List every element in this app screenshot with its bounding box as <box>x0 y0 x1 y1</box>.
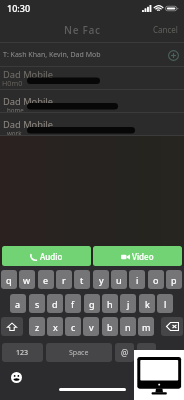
button[interactable]: Audio <box>2 246 91 266</box>
button[interactable]: Shift <box>1 317 23 336</box>
button[interactable]: r <box>56 270 72 289</box>
button[interactable]: Video <box>93 246 182 266</box>
staticText: r <box>62 274 66 286</box>
staticText: u <box>116 274 122 286</box>
button[interactable]: m <box>138 317 154 336</box>
button[interactable]: u <box>111 270 127 289</box>
other: Shift <box>7 322 17 332</box>
staticText: Audio <box>40 251 63 262</box>
button[interactable]: h <box>102 294 118 313</box>
button[interactable]: . <box>137 343 156 362</box>
staticText: y <box>99 274 104 286</box>
staticText: Ne Fac <box>64 23 101 37</box>
staticText: s <box>35 298 40 310</box>
staticText: H0m0 <box>2 78 23 88</box>
button[interactable]: Dad Mobile <box>0 113 184 136</box>
button[interactable]: g <box>84 294 100 313</box>
staticText: Dad Mobile <box>3 95 53 108</box>
button[interactable]: Cancel <box>153 24 178 35</box>
button[interactable]: Emoji <box>11 372 22 383</box>
staticText: x <box>53 321 58 333</box>
button[interactable]: v <box>83 317 99 336</box>
staticText: c <box>71 321 76 333</box>
button[interactable]: Dad Mobile <box>0 90 184 113</box>
staticText: b <box>107 321 113 333</box>
staticText: z <box>35 321 40 333</box>
staticText: 10:30 <box>7 2 31 14</box>
button[interactable]: i <box>129 270 145 289</box>
staticText: work <box>7 129 22 136</box>
button[interactable]: e <box>38 270 54 289</box>
staticText: m <box>142 321 151 333</box>
staticText: @ <box>121 347 129 358</box>
button[interactable]: b <box>102 317 118 336</box>
staticText: j <box>127 298 130 310</box>
staticText: Video <box>132 251 154 262</box>
staticText: w <box>23 274 31 286</box>
button[interactable]: o <box>148 270 164 289</box>
staticText: . <box>145 347 148 358</box>
staticText: v <box>89 321 94 333</box>
button[interactable]: l <box>157 294 173 313</box>
staticText: k <box>145 298 150 310</box>
button[interactable]: Add contact <box>168 50 179 61</box>
button[interactable]: f <box>65 294 81 313</box>
button[interactable]: s <box>29 294 45 313</box>
button[interactable]: 123 <box>2 343 43 362</box>
button[interactable]: w <box>19 270 35 289</box>
button[interactable]: x <box>47 317 63 336</box>
staticText: i <box>136 274 139 286</box>
staticText: g <box>89 298 95 310</box>
staticText: f <box>71 298 75 310</box>
staticText: o <box>153 274 159 286</box>
staticText: n <box>125 321 131 333</box>
staticText: 123 <box>16 348 29 358</box>
button[interactable]: k <box>139 294 155 313</box>
button[interactable]: d <box>47 294 63 313</box>
button[interactable]: a <box>10 294 26 313</box>
button[interactable]: t <box>74 270 90 289</box>
staticText: l <box>164 298 167 310</box>
button[interactable]: p <box>166 270 182 289</box>
button[interactable]: Space <box>46 343 112 362</box>
staticText: p <box>171 274 177 286</box>
staticText: home <box>7 106 24 113</box>
staticText: q <box>6 274 12 286</box>
staticText: d <box>52 298 58 310</box>
staticText: a <box>15 298 21 310</box>
button[interactable]: Display <box>134 350 184 400</box>
button[interactable]: Backspace <box>161 317 183 336</box>
button[interactable]: y <box>93 270 109 289</box>
button[interactable]: c <box>65 317 81 336</box>
staticText: Dad Mobile <box>3 118 53 131</box>
staticText: h <box>107 298 113 310</box>
button[interactable]: q <box>1 270 17 289</box>
staticText: T: Kash Khan, Kevin, Dad Mob <box>3 50 101 60</box>
staticText: Dad Mobile <box>3 68 53 81</box>
button[interactable]: @ <box>115 343 134 362</box>
staticText: Space <box>69 348 89 358</box>
button[interactable]: n <box>120 317 136 336</box>
other: Backspace <box>166 322 179 331</box>
button[interactable]: j <box>120 294 136 313</box>
staticText: t <box>80 274 84 286</box>
button[interactable]: Dad Mobile <box>0 67 184 90</box>
staticText: e <box>43 274 49 286</box>
button[interactable]: z <box>29 317 45 336</box>
